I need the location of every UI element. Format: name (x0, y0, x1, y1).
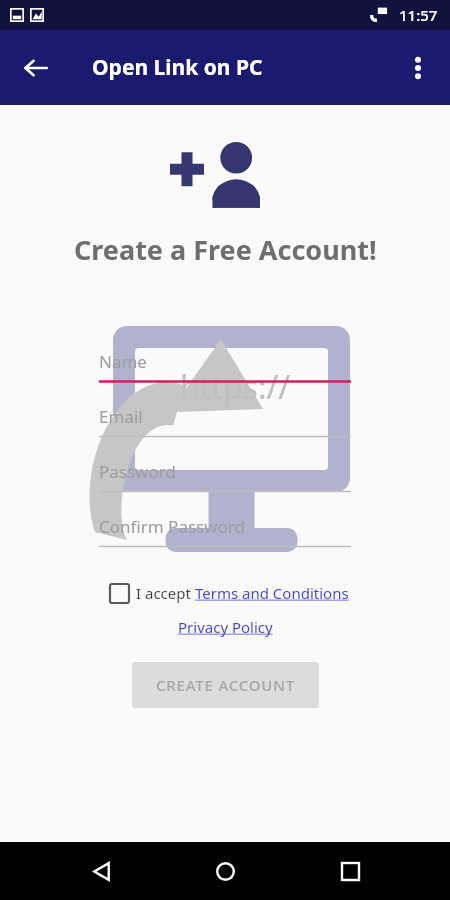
staticText: Password (99, 460, 176, 483)
staticText: 11:57 (399, 5, 438, 25)
staticText: Confirm Password (99, 515, 245, 538)
staticText: Create a Free Account! (74, 231, 377, 268)
staticText: Open Link on PC (92, 53, 263, 82)
staticText: I accept (136, 583, 195, 603)
button[interactable]: Home (201, 847, 249, 895)
staticText: https:// (180, 365, 291, 409)
button[interactable]: Privacy Policy (172, 614, 279, 640)
button[interactable]: CREATE ACCOUNT (132, 662, 319, 708)
button[interactable]: Back (77, 847, 125, 895)
staticText: Name (99, 350, 147, 373)
button[interactable]: More options (396, 46, 440, 90)
staticText: Privacy Policy (178, 617, 273, 637)
staticText: Terms and Conditions (195, 583, 349, 603)
button[interactable]: Terms and Conditions (195, 580, 349, 606)
staticText: CREATE ACCOUNT (156, 675, 295, 695)
button[interactable]: Back (14, 46, 58, 90)
button[interactable]: Accept terms checkbox (102, 576, 136, 610)
button[interactable]: Recent apps (326, 847, 374, 895)
staticText: Email (99, 405, 143, 428)
